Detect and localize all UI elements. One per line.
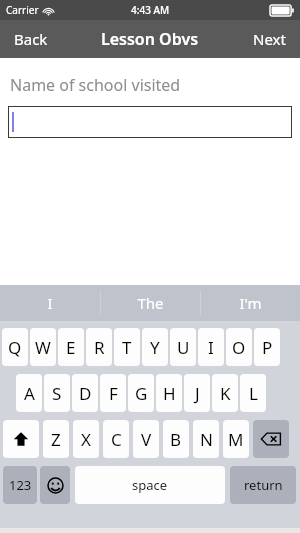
button[interactable] [8,106,292,138]
staticText: N [200,428,213,451]
staticText: R [94,336,105,359]
staticText: 4:43 AM [131,3,170,17]
staticText: M [228,428,244,451]
button[interactable]: Next [239,20,300,58]
staticText: Name of school visited [10,74,181,96]
button[interactable]: Y [142,328,168,366]
staticText: D [79,382,92,405]
button[interactable]: Shift [3,420,39,458]
button[interactable]: J [184,374,210,412]
button[interactable]: Back [0,20,62,58]
button[interactable]: X [73,420,99,458]
staticText: F [109,382,118,405]
staticText: I [47,293,53,313]
staticText: K [220,382,231,405]
button[interactable]: return [230,466,296,504]
staticText: Q [8,336,22,359]
button[interactable]: B [163,420,189,458]
button[interactable]: K [212,374,238,412]
button[interactable]: Delete [253,420,289,458]
button[interactable]: V [133,420,159,458]
staticText: 123 [9,476,32,494]
staticText: H [163,382,176,405]
button[interactable]: The [101,285,200,321]
button[interactable]: L [240,374,266,412]
button[interactable]: U [170,328,196,366]
staticText: G [135,382,148,405]
button[interactable]: E [58,328,84,366]
staticText: The [137,293,164,313]
staticText: O [232,336,246,359]
staticText: Next [253,29,286,49]
staticText: P [262,336,273,359]
staticText: U [177,336,190,359]
button[interactable]: T [114,328,140,366]
button[interactable]: Z [43,420,69,458]
staticText: A [24,382,35,405]
staticText: Back [14,29,48,49]
button[interactable]: O [226,328,252,366]
staticText: space [132,476,168,494]
staticText: C [111,428,122,451]
button[interactable]: Emoji [40,466,70,504]
staticText: S [52,382,62,405]
button[interactable]: F [100,374,126,412]
button[interactable]: R [86,328,112,366]
button[interactable]: H [156,374,182,412]
staticText: Lesson Obvs [101,28,199,50]
button[interactable]: C [103,420,129,458]
button[interactable]: I'm [201,285,300,321]
button[interactable]: S [44,374,70,412]
staticText: I'm [239,293,262,313]
button[interactable]: D [72,374,98,412]
staticText: E [66,336,76,359]
staticText: V [141,428,152,451]
button[interactable]: W [30,328,56,366]
staticText: B [170,428,182,451]
button[interactable]: I [0,285,100,321]
staticText: L [249,382,258,405]
staticText: Carrier [6,3,39,17]
staticText: I [208,336,214,359]
button[interactable]: 123 [3,466,37,504]
button[interactable]: space [75,466,225,504]
button[interactable]: P [254,328,280,366]
staticText: X [81,428,91,451]
staticText: Z [51,428,61,451]
staticText: Y [150,336,160,359]
staticText: return [244,476,283,494]
button[interactable]: A [16,374,42,412]
button[interactable]: N [193,420,219,458]
button[interactable]: M [223,420,249,458]
staticText: T [122,336,132,359]
button[interactable]: G [128,374,154,412]
staticText: W [35,336,51,359]
button[interactable]: I [198,328,224,366]
staticText: J [195,382,200,405]
button[interactable]: Q [2,328,28,366]
